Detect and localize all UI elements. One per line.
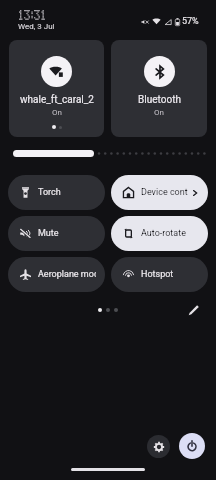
button[interactable]: whale_ft_caral_2: [9, 40, 104, 137]
staticText: On: [154, 108, 164, 117]
button[interactable]: Power: [179, 433, 205, 459]
staticText: Wed, 3 Jul: [18, 22, 55, 31]
button[interactable]: Auto-rotate: [111, 216, 208, 251]
button[interactable]: Brightness: [13, 150, 94, 157]
staticText: On: [52, 108, 62, 117]
button[interactable]: Device controls: [111, 175, 208, 210]
staticText: Device controls: [141, 187, 188, 198]
button[interactable]: Settings: [147, 435, 170, 458]
staticText: Hotspot: [141, 269, 199, 280]
staticText: Bluetooth: [138, 94, 181, 106]
staticText: Aeroplane mode: [38, 269, 96, 280]
button[interactable]: Bluetooth: [111, 40, 207, 137]
button[interactable]: Aeroplane mode: [8, 257, 105, 292]
staticText: Auto-rotate: [141, 228, 199, 239]
staticText: Torch: [38, 187, 96, 198]
staticText: Mute: [38, 228, 96, 239]
staticText: whale_ft_caral_2: [20, 94, 94, 106]
button[interactable]: Mute: [8, 216, 105, 251]
button[interactable]: Torch: [8, 175, 105, 210]
button[interactable]: Edit tiles: [184, 300, 204, 320]
button[interactable]: Hotspot: [111, 257, 208, 292]
staticText: 57%: [182, 16, 199, 27]
